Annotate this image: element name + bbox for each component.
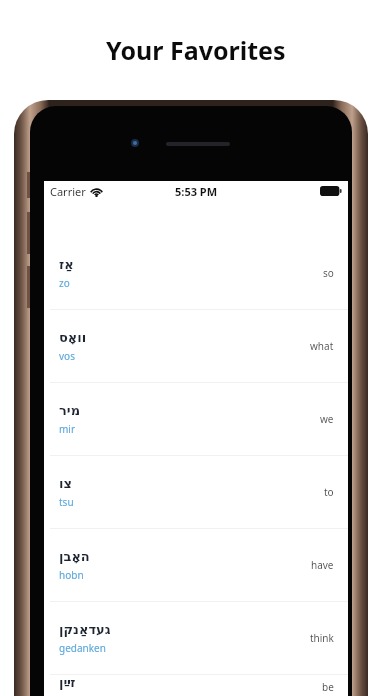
staticText: mir <box>59 422 76 436</box>
staticText: hobn <box>59 568 84 582</box>
other: Wi-Fi <box>90 187 103 197</box>
staticText: zo <box>59 276 70 290</box>
staticText: we <box>320 412 334 426</box>
staticText: האָבן <box>59 549 90 564</box>
other: Battery full <box>320 186 342 196</box>
staticText: געדאַנקן <box>59 622 111 637</box>
button[interactable]: זײַן <box>44 675 348 696</box>
staticText: gedanken <box>59 641 106 655</box>
staticText: what <box>310 339 334 353</box>
staticText: זײַן <box>59 675 76 690</box>
button[interactable]: האָבן <box>44 529 348 602</box>
staticText: 5:53 PM <box>175 184 218 199</box>
button[interactable]: געדאַנקן <box>44 602 348 675</box>
staticText: so <box>323 266 334 280</box>
staticText: צו <box>59 476 72 491</box>
staticText: אַז <box>59 257 74 272</box>
staticText: vos <box>59 349 75 363</box>
staticText: וואָס <box>59 330 87 345</box>
staticText: have <box>311 558 334 572</box>
button[interactable]: מיר <box>44 383 348 456</box>
staticText: be <box>322 680 334 694</box>
staticText: Carrier <box>50 184 86 199</box>
staticText: to <box>324 485 334 499</box>
staticText: think <box>310 631 334 645</box>
staticText: מיר <box>59 403 81 418</box>
button[interactable]: וואָס <box>44 310 348 383</box>
button[interactable]: אַז <box>44 237 348 310</box>
staticText: tsu <box>59 495 74 509</box>
button[interactable]: צו <box>44 456 348 529</box>
staticText: Your Favorites <box>106 33 286 67</box>
